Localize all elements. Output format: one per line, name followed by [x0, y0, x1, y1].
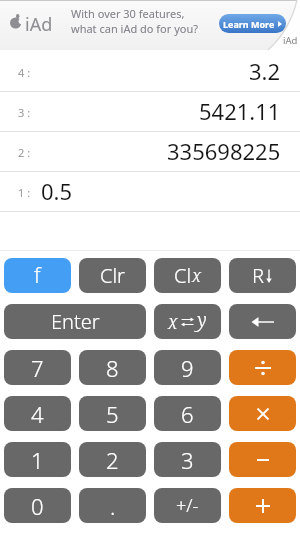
staticText: .: [110, 491, 116, 521]
staticText: y: [197, 307, 207, 333]
staticText: iAd: [25, 12, 53, 37]
button[interactable]: 9: [154, 350, 221, 385]
staticText: Learn More: [223, 18, 275, 30]
staticText: 2 :: [18, 145, 31, 160]
staticText: 9: [181, 353, 194, 383]
button[interactable]: .: [79, 488, 146, 523]
staticText: +/-: [176, 493, 199, 518]
staticText: x: [168, 309, 178, 335]
staticText: 3 :: [18, 105, 31, 120]
button[interactable]: Cl: [154, 258, 221, 293]
button[interactable]: Clr: [79, 258, 146, 293]
staticText: f: [34, 261, 41, 290]
staticText: 6: [181, 399, 194, 429]
staticText: Clr: [100, 262, 125, 289]
button[interactable]: [229, 396, 296, 431]
button[interactable]: [229, 442, 296, 477]
staticText: 7: [31, 353, 44, 383]
staticText: x: [192, 263, 202, 288]
button[interactable]: 4: [4, 396, 71, 431]
staticText: With over 30 features,: [71, 6, 185, 21]
button[interactable]: 0: [4, 488, 71, 523]
staticText: 3: [181, 445, 194, 475]
staticText: 5: [106, 399, 119, 429]
staticText: what can iAd do for you?: [71, 21, 199, 36]
button[interactable]: 6: [154, 396, 221, 431]
button[interactable]: 5: [79, 396, 146, 431]
button[interactable]: 1: [4, 442, 71, 477]
button[interactable]: [229, 350, 296, 385]
button[interactable]: Learn More: [219, 14, 286, 33]
staticText: iAd: [283, 34, 298, 47]
staticText: 4 :: [18, 65, 31, 80]
button[interactable]: +/-: [154, 488, 221, 523]
staticText: 1 :: [18, 185, 31, 200]
button[interactable]: [229, 488, 296, 523]
staticText: 1: [31, 445, 44, 475]
button[interactable]: Enter: [4, 304, 146, 339]
button[interactable]: 8: [79, 350, 146, 385]
staticText: R: [252, 262, 264, 289]
button[interactable]: f: [4, 258, 71, 293]
staticText: Enter: [51, 308, 100, 335]
button[interactable]: 7: [4, 350, 71, 385]
button[interactable]: [229, 304, 296, 339]
staticText: 4: [31, 399, 44, 429]
staticText: 335698225: [167, 136, 281, 166]
staticText: 8: [106, 353, 119, 383]
staticText: 0: [31, 491, 44, 521]
staticText: 2: [106, 445, 119, 475]
staticText: 3.2: [249, 56, 281, 86]
button[interactable]: x: [154, 304, 221, 339]
staticText: 5421.11: [199, 96, 281, 126]
button[interactable]: 2: [79, 442, 146, 477]
staticText: 0.5: [41, 176, 73, 206]
button[interactable]: 3: [154, 442, 221, 477]
staticText: Cl: [174, 262, 192, 289]
button[interactable]: R: [229, 258, 296, 293]
